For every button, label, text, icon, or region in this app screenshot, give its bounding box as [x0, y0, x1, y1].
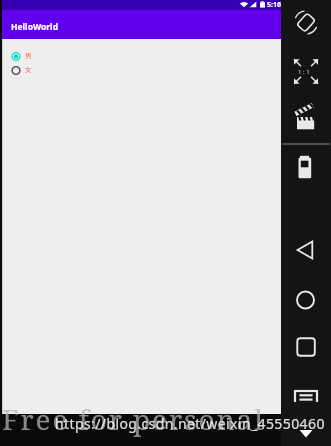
button[interactable]: [291, 285, 321, 315]
button[interactable]: [291, 101, 321, 131]
staticText: Free for personal: [2, 400, 265, 438]
button[interactable]: 女: [9, 62, 69, 77]
button[interactable]: 男: [9, 48, 69, 63]
button[interactable]: [291, 7, 321, 37]
button[interactable]: [291, 235, 321, 265]
staticText: 1 : 1: [298, 68, 310, 76]
button[interactable]: [291, 56, 321, 86]
staticText: 女: [25, 66, 32, 74]
staticText: 5:16: [267, 0, 281, 10]
staticText: https://blog.csdn.net/weixin_45550460: [55, 414, 325, 433]
staticText: HelloWorld: [11, 21, 59, 33]
button[interactable]: [291, 332, 321, 362]
staticText: 男: [25, 52, 32, 60]
button[interactable]: [291, 385, 321, 407]
button[interactable]: [291, 150, 321, 180]
